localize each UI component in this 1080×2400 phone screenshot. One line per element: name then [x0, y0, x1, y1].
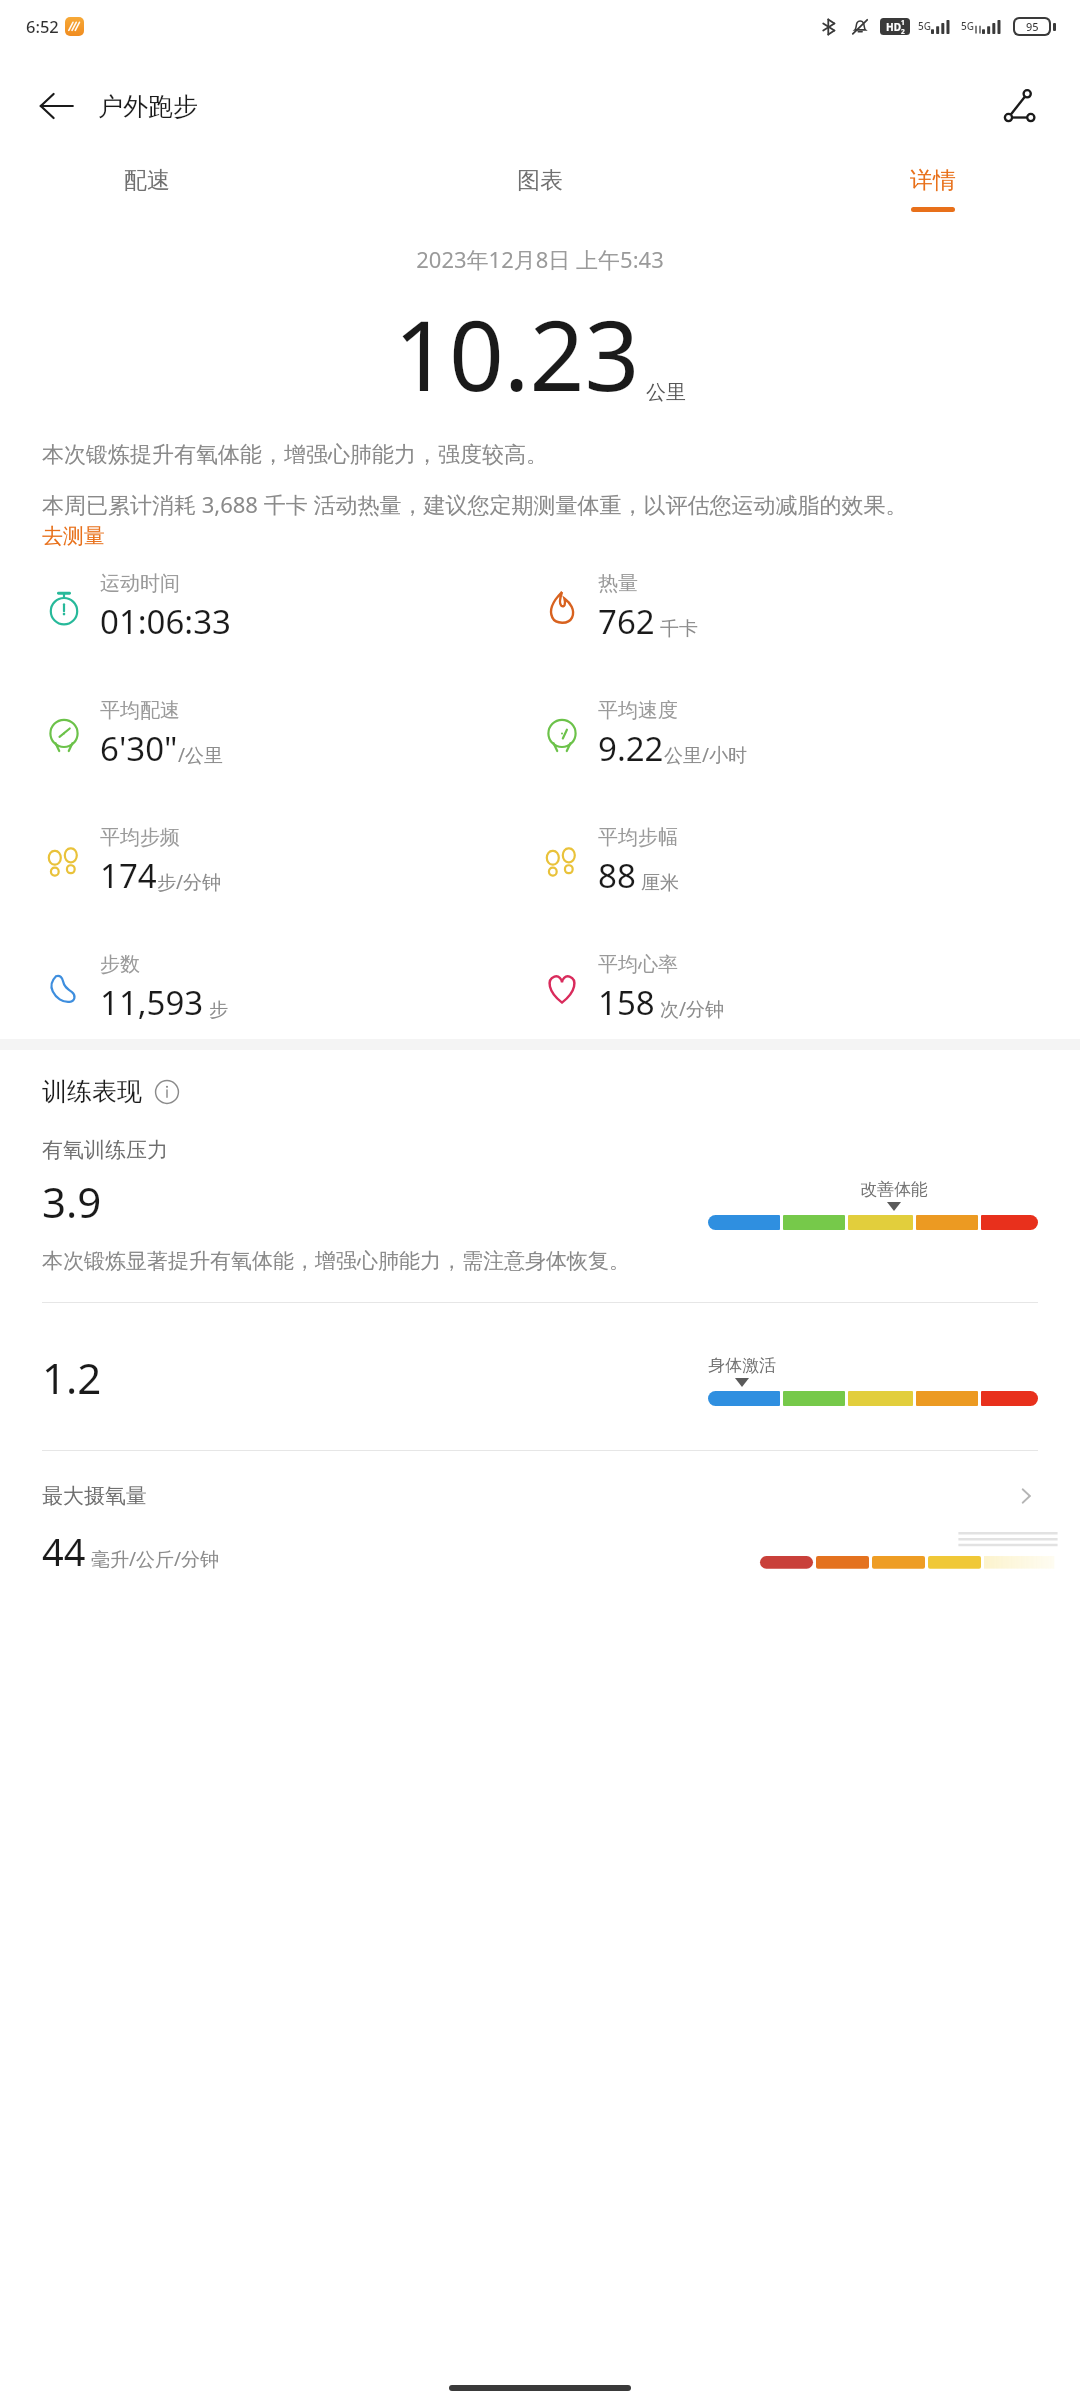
staticText: 步/分钟: [157, 869, 222, 895]
button[interactable]: 最大摄氧量: [0, 1483, 1080, 1509]
staticText: 千卡: [655, 615, 698, 641]
staticText: 次/分钟: [655, 996, 725, 1022]
staticText: 1.2: [42, 1349, 102, 1406]
staticText: 2023年12月8日 上午5:43: [416, 244, 664, 274]
staticText: 10.23: [394, 288, 640, 419]
staticText: 本周已累计消耗 3,688 千卡 活动热量，建议您定期测量体重，以评估您运动减脂…: [42, 489, 908, 519]
staticText: 平均速度: [598, 698, 678, 723]
staticText: 有氧训练压力: [42, 1137, 168, 1163]
staticText: 44: [42, 1525, 86, 1577]
staticText: 01:06:33: [100, 599, 231, 644]
staticText: 3.9: [42, 1173, 102, 1230]
staticText: 热量: [598, 571, 638, 596]
staticText: 95: [1026, 19, 1039, 34]
button[interactable]: 图表: [503, 160, 577, 218]
button[interactable]: Back: [30, 78, 204, 134]
staticText: 厘米: [636, 869, 679, 895]
staticText: 步: [204, 996, 228, 1022]
staticText: 平均步频: [100, 825, 180, 850]
staticText: 9.22: [598, 726, 664, 771]
staticText: 本次锻炼显著提升有氧体能，增强心肺能力，需注意身体恢复。: [42, 1248, 630, 1274]
staticText: 158: [598, 980, 655, 1025]
button[interactable]: 详情: [896, 160, 970, 218]
staticText: 毫升/公斤/分钟: [86, 1546, 220, 1572]
staticText: 身体激活: [708, 1355, 776, 1376]
staticText: /公里: [178, 742, 224, 768]
staticText: 详情: [910, 166, 956, 195]
staticText: 11,593: [100, 980, 204, 1025]
staticText: 训练表现: [42, 1076, 142, 1107]
button[interactable]: 热量: [540, 571, 698, 644]
staticText: 88: [598, 853, 636, 898]
staticText: 平均配速: [100, 698, 180, 723]
button[interactable]: 配速: [110, 160, 184, 218]
staticText: 图表: [517, 166, 563, 195]
button[interactable]: 运动时间: [42, 571, 231, 644]
button[interactable]: 步数: [42, 952, 228, 1025]
button[interactable]: 平均步频: [42, 825, 222, 898]
button[interactable]: 去测量: [42, 523, 105, 549]
staticText: 6'30": [100, 726, 178, 771]
staticText: 5G: [961, 19, 974, 33]
staticText: 配速: [124, 166, 170, 195]
staticText: 步数: [100, 952, 140, 977]
other: Back: [36, 86, 76, 126]
staticText: 平均心率: [598, 952, 678, 977]
other: Info: [154, 1079, 180, 1105]
button[interactable]: 平均速度: [540, 698, 748, 771]
staticText: 5G: [918, 19, 931, 33]
button[interactable]: 平均步幅: [540, 825, 679, 898]
staticText: 1: [901, 18, 905, 27]
button[interactable]: 平均配速: [42, 698, 224, 771]
staticText: 6:52: [26, 15, 59, 37]
staticText: 最大摄氧量: [42, 1483, 147, 1509]
staticText: 平均步幅: [598, 825, 678, 850]
staticText: 改善体能: [860, 1179, 928, 1200]
button[interactable]: 平均心率: [540, 952, 725, 1025]
button[interactable]: 训练表现: [42, 1076, 180, 1107]
staticText: 762: [598, 599, 655, 644]
other: Open VO2 max: [1014, 1484, 1038, 1508]
staticText: 174: [100, 853, 157, 898]
staticText: 户外跑步: [98, 91, 198, 122]
staticText: 2: [901, 27, 905, 35]
staticText: 本次锻炼提升有氧体能，增强心肺能力，强度较高。: [42, 441, 548, 469]
button[interactable]: Share: [994, 80, 1046, 132]
staticText: 去测量: [42, 523, 105, 549]
staticText: 公里: [646, 380, 686, 405]
staticText: 运动时间: [100, 571, 180, 596]
staticText: 公里/小时: [664, 742, 748, 768]
staticText: HD: [886, 20, 901, 34]
